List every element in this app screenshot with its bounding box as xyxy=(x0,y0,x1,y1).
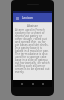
staticText: A term used in French cookery for a shee… xyxy=(15,28,50,74)
button[interactable]: Navigate up xyxy=(13,13,52,22)
button[interactable]: Home xyxy=(30,81,36,87)
staticText: Abaisse xyxy=(15,24,50,28)
button[interactable]: Recents xyxy=(40,81,46,87)
staticText: Lexicon xyxy=(22,16,34,20)
button[interactable]: Back xyxy=(19,81,25,87)
button[interactable]: Navigate up xyxy=(14,15,20,21)
